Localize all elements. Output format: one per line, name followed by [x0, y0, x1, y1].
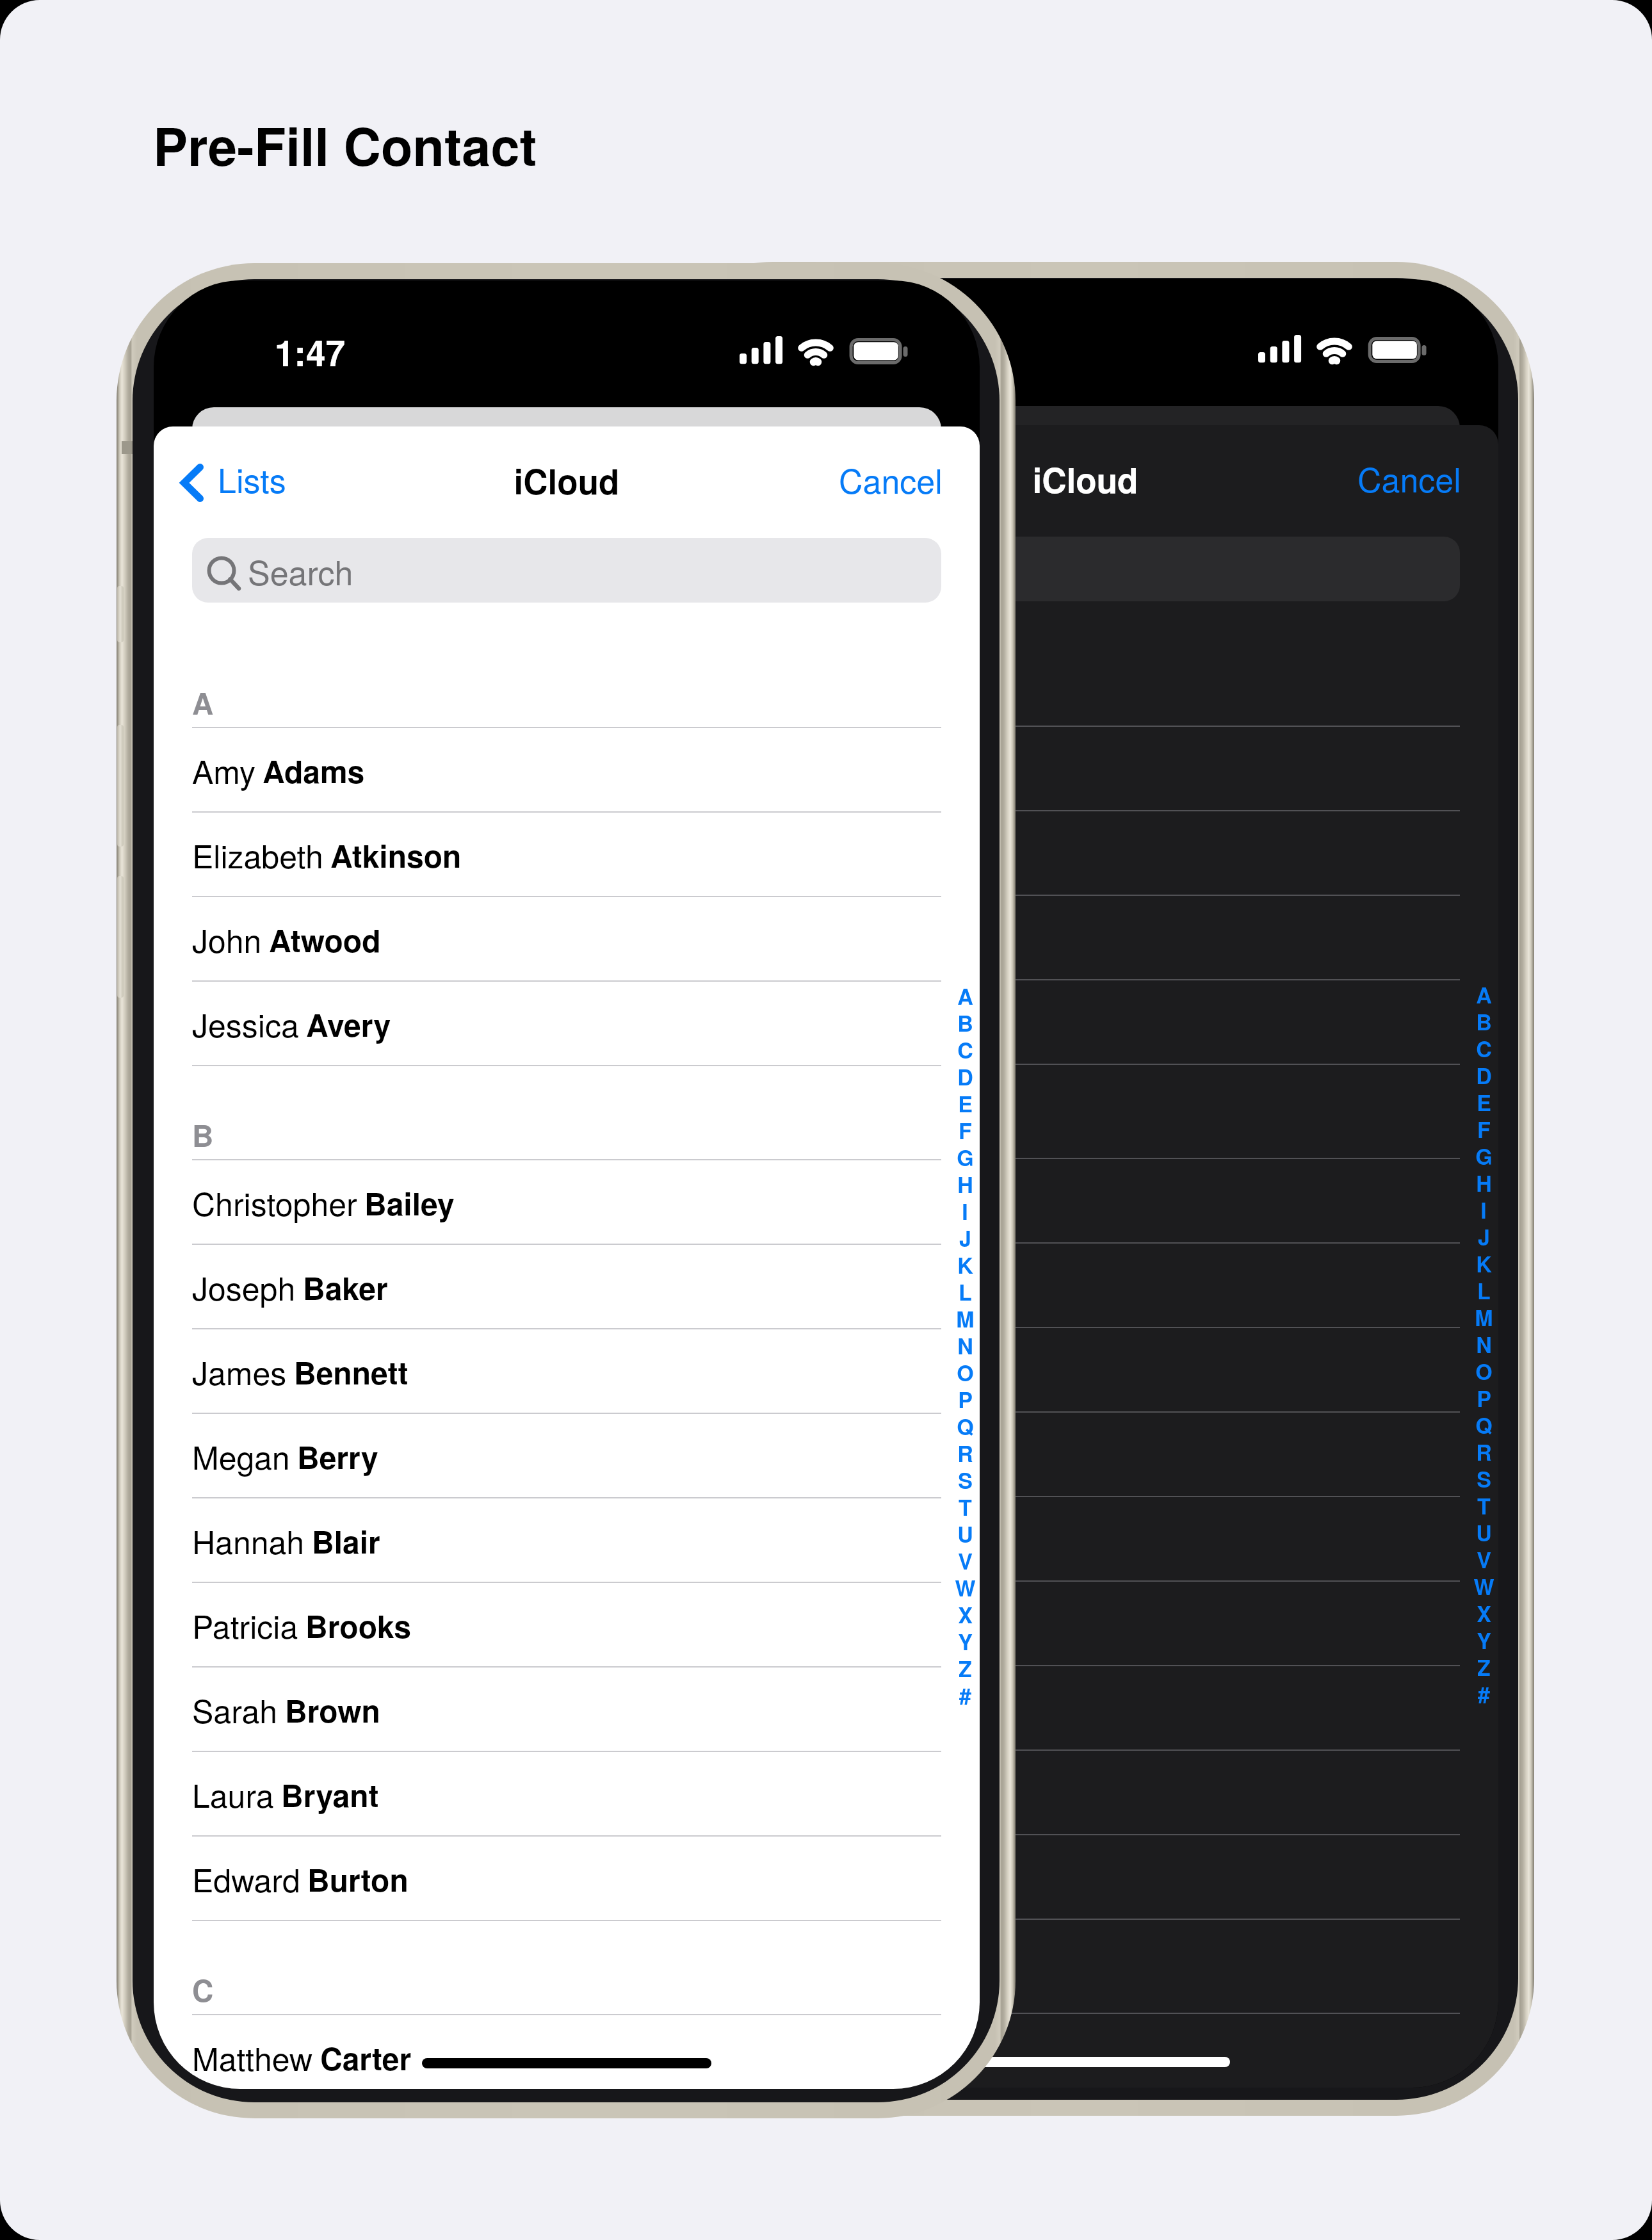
staticText: Z	[959, 1653, 972, 1680]
staticText: Edward	[192, 1856, 300, 1902]
staticText: Lists	[218, 455, 286, 502]
button[interactable]: John	[672, 896, 1498, 980]
staticText: F	[1477, 1114, 1491, 1140]
staticText: Megan	[192, 1433, 290, 1479]
staticText: Adams	[263, 749, 365, 793]
button[interactable]: Christopher	[154, 1160, 980, 1245]
button[interactable]: Edward	[672, 1835, 1498, 1920]
staticText: Cancel	[839, 455, 943, 503]
button[interactable]: John	[154, 897, 980, 982]
staticText: L	[959, 1276, 972, 1303]
button[interactable]: Laura	[672, 1751, 1498, 1835]
button[interactable]: Megan	[154, 1414, 980, 1498]
button[interactable]: Cancel	[1354, 448, 1465, 508]
button[interactable]: Joseph	[154, 1245, 980, 1329]
staticText: Search	[248, 547, 353, 594]
staticText: Q	[1475, 1409, 1493, 1436]
staticText: Patricia	[192, 1602, 298, 1648]
button[interactable]: Sarah	[672, 1666, 1498, 1751]
staticText: James	[192, 1349, 287, 1395]
button[interactable]: James	[672, 1328, 1498, 1413]
button[interactable]: Patricia	[672, 1582, 1498, 1666]
staticText: 1:47	[275, 327, 346, 377]
staticText: E	[958, 1088, 973, 1115]
button[interactable]: Patricia	[154, 1583, 980, 1668]
staticText: Berry	[297, 1434, 378, 1479]
staticText: P	[958, 1384, 973, 1411]
button[interactable]: Edward	[154, 1837, 980, 1921]
staticText: N	[1476, 1329, 1492, 1356]
button[interactable]: Alphabet index	[1471, 979, 1496, 1705]
button[interactable]: Hannah	[672, 1497, 1498, 1582]
button[interactable]: Laura	[154, 1752, 980, 1837]
staticText: R	[957, 1438, 973, 1465]
staticText: Blair	[312, 1519, 380, 1563]
staticText: I	[1480, 1194, 1487, 1221]
staticText: Christopher	[192, 1180, 357, 1226]
button[interactable]: Amy	[154, 728, 980, 813]
button[interactable]: Matthew	[672, 2014, 1498, 2088]
button[interactable]: Back to Lists	[174, 455, 315, 506]
button[interactable]: Hannah	[154, 1498, 980, 1583]
staticText: Brown	[285, 1688, 380, 1732]
staticText: M	[1475, 1302, 1493, 1329]
button[interactable]: Christopher	[672, 1159, 1498, 1244]
staticText: Bennett	[294, 1350, 409, 1394]
button[interactable]: Cancel	[835, 449, 946, 509]
staticText: Matthew	[711, 2033, 832, 2079]
staticText: Sarah	[192, 1687, 278, 1733]
staticText: W	[955, 1572, 976, 1599]
staticText: #	[959, 1680, 971, 1707]
button[interactable]: Megan	[672, 1413, 1498, 1497]
staticText: U	[1476, 1517, 1492, 1544]
staticText: A	[192, 681, 214, 724]
button[interactable]: James	[154, 1329, 980, 1414]
staticText: #	[1478, 1678, 1490, 1705]
staticText: X	[1477, 1598, 1491, 1625]
staticText: G	[1475, 1140, 1493, 1167]
button[interactable]: Jessica	[672, 980, 1498, 1065]
staticText: V	[1477, 1544, 1491, 1571]
staticText: B	[957, 1007, 973, 1034]
staticText: Bailey	[883, 1180, 973, 1224]
button[interactable]: Elizabeth	[154, 813, 980, 897]
button[interactable]: Elizabeth	[672, 811, 1498, 896]
button[interactable]: Search contacts	[192, 538, 941, 603]
staticText: Y	[958, 1626, 973, 1653]
button[interactable]: Alphabet index	[952, 980, 978, 1707]
staticText: H	[957, 1169, 973, 1196]
button[interactable]: Search contacts	[711, 537, 1460, 601]
button[interactable]: Sarah	[154, 1668, 980, 1752]
staticText: C	[1476, 1033, 1492, 1060]
staticText: Joseph	[192, 1264, 296, 1310]
staticText: iCloud	[154, 456, 980, 505]
staticText: Elizabeth	[192, 832, 323, 878]
staticText: D	[957, 1061, 973, 1088]
button[interactable]: Joseph	[672, 1244, 1498, 1328]
staticText: Brooks	[305, 1603, 411, 1648]
staticText: B	[192, 1114, 214, 1156]
button[interactable]: Matthew	[154, 2015, 980, 2089]
staticText: D	[1476, 1060, 1492, 1087]
button[interactable]: Amy	[672, 727, 1498, 811]
staticText: Avery	[306, 1002, 391, 1046]
staticText: L	[1477, 1275, 1491, 1302]
staticText: Q	[957, 1411, 974, 1438]
staticText: A	[1476, 979, 1492, 1006]
staticText: Laura	[192, 1771, 274, 1817]
button[interactable]: Jessica	[154, 982, 980, 1066]
